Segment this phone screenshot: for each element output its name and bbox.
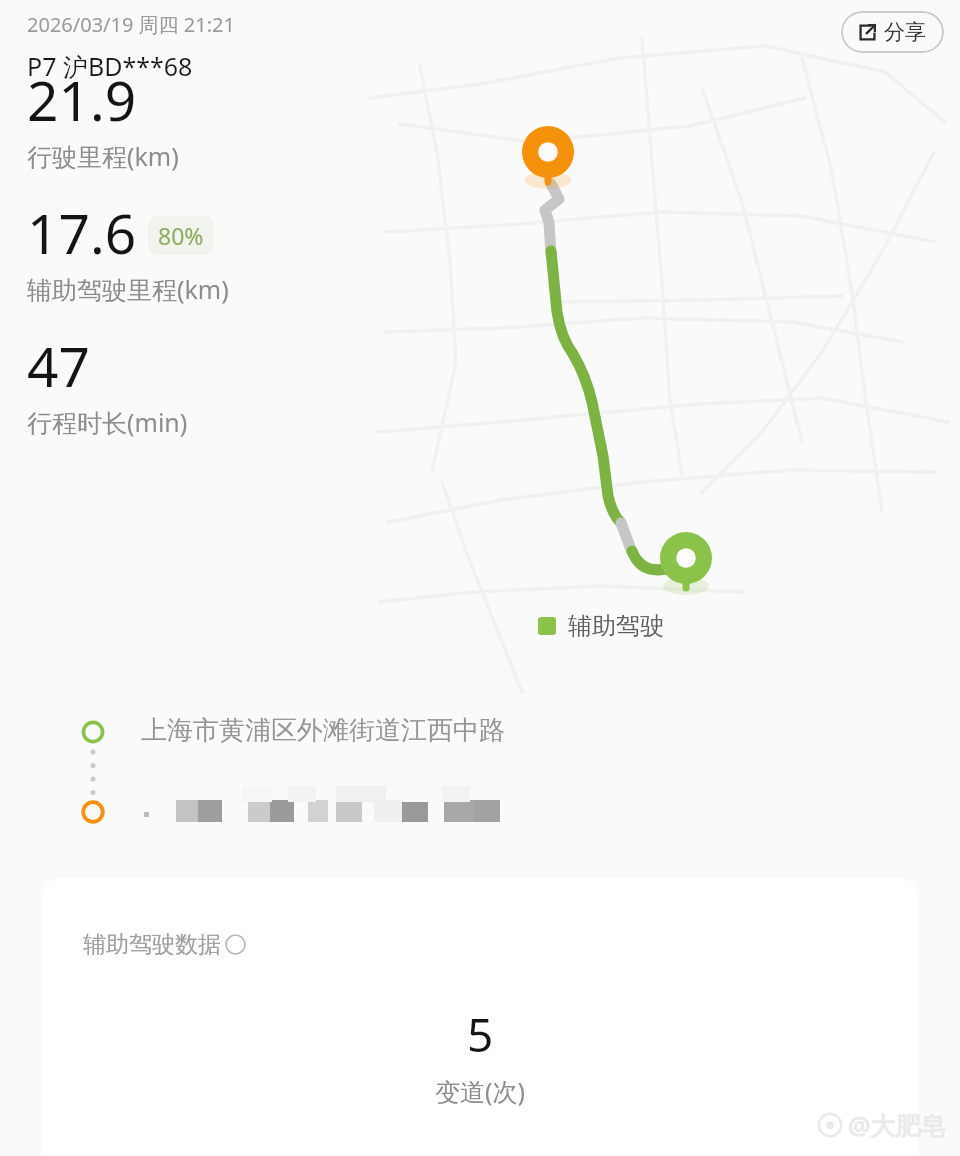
staticText: 5 (467, 1003, 494, 1066)
staticText: 21.9 (27, 62, 137, 137)
staticText: 辅助驾驶 (568, 611, 664, 641)
staticText: 2026/03/19 周四 21:21 (27, 11, 235, 38)
staticText: 行驶里程(km) (27, 139, 179, 173)
staticText: 分享 (884, 19, 926, 45)
button[interactable]: 辅助驾驶数据 (42, 878, 918, 1156)
staticText: 47 (27, 328, 90, 403)
staticText: 辅助驾驶数据 (83, 930, 221, 959)
button[interactable]: 分享 (841, 11, 944, 53)
staticText: 变道(次) (435, 1074, 526, 1108)
staticText: 80% (158, 220, 204, 251)
staticText: 行程时长(min) (27, 405, 188, 439)
staticText: 上海市黄浦区外滩街道江西中路 (141, 714, 505, 747)
staticText: 17.6 (27, 195, 137, 270)
staticText: @大肥皂 (848, 1108, 946, 1142)
staticText: P7 沪BD***68 (27, 49, 193, 83)
staticText: 辅助驾驶里程(km) (27, 272, 229, 306)
